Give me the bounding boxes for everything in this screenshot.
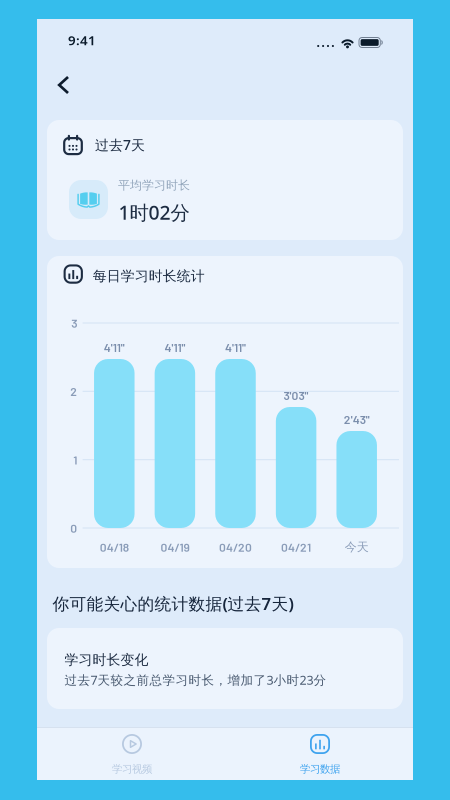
staticText: 每日学习时长统计	[93, 267, 205, 285]
staticText: 3	[71, 316, 77, 330]
staticText: 2'43''	[344, 412, 370, 426]
staticText: 04/19	[160, 540, 189, 554]
staticText: 3'03''	[284, 388, 309, 402]
staticText: 过去7天	[95, 135, 145, 154]
staticText: 过去7天较之前总学习时长，增加了3小时23分	[64, 671, 326, 688]
staticText: 1时02分	[118, 199, 189, 225]
staticText: 04/18	[100, 540, 129, 554]
staticText: 学习数据	[300, 762, 340, 775]
button[interactable]: 学习视频	[37, 727, 225, 780]
staticText: 你可能关心的统计数据(过去7天)	[53, 592, 294, 615]
staticText: 04/20	[219, 540, 252, 554]
button[interactable]: Back	[42, 65, 86, 105]
staticText: 学习时长变化	[64, 651, 148, 669]
staticText: 2	[70, 384, 77, 398]
staticText: 平均学习时长	[118, 178, 190, 193]
staticText: 4'11''	[164, 340, 185, 354]
staticText: 0	[70, 521, 77, 535]
staticText: 1	[73, 452, 77, 467]
button[interactable]: 学习数据	[225, 727, 413, 780]
staticText: 今天	[345, 539, 369, 554]
staticText: 4'11''	[225, 340, 246, 354]
staticText: 9:41	[68, 31, 96, 49]
staticText: 4'11''	[104, 340, 125, 354]
staticText: 04/21	[281, 540, 311, 554]
staticText: 学习视频	[112, 762, 152, 775]
